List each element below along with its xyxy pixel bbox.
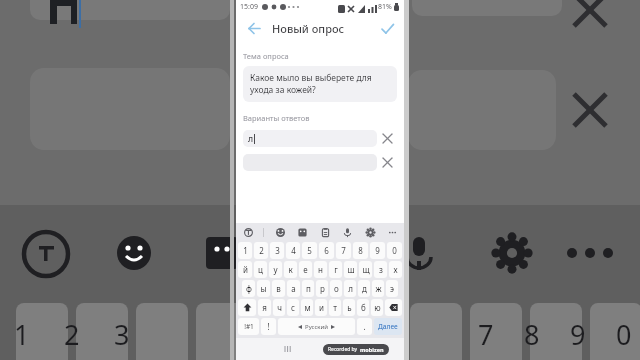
staticText: 0 bbox=[392, 245, 397, 256]
staticText: э bbox=[390, 283, 394, 294]
button[interactable]: 5 bbox=[302, 242, 317, 259]
staticText: 4 bbox=[291, 245, 296, 256]
staticText: ж bbox=[375, 283, 382, 294]
button[interactable]: !#1 bbox=[238, 318, 259, 335]
button[interactable]: Перевод bbox=[241, 225, 255, 239]
button[interactable]: Удалить вариант bbox=[377, 128, 397, 148]
staticText: б bbox=[361, 302, 366, 313]
staticText: 9 bbox=[570, 316, 586, 353]
button[interactable]: р bbox=[316, 280, 328, 297]
button[interactable]: 3 bbox=[270, 242, 284, 259]
staticText: 7 bbox=[341, 245, 346, 256]
button[interactable]: ш bbox=[344, 261, 357, 278]
button[interactable]: Голосовой ввод bbox=[340, 225, 354, 239]
staticText: л bbox=[248, 133, 254, 145]
staticText: н bbox=[318, 264, 323, 275]
staticText: ь bbox=[347, 302, 352, 313]
button[interactable]: 7 bbox=[336, 242, 351, 259]
button[interactable]: ь bbox=[343, 299, 355, 316]
button[interactable]: Далее bbox=[374, 318, 402, 335]
staticText: я bbox=[262, 302, 267, 313]
button[interactable]: Буфер обмена bbox=[318, 225, 332, 239]
button[interactable]: 9 bbox=[370, 242, 385, 259]
staticText: ш bbox=[347, 264, 355, 275]
button[interactable]: Эмодзи bbox=[273, 225, 287, 239]
button[interactable]: е bbox=[299, 261, 312, 278]
staticText: 9 bbox=[375, 245, 380, 256]
button[interactable]: 6 bbox=[319, 242, 334, 259]
button[interactable]: ж bbox=[372, 280, 384, 297]
staticText: г bbox=[334, 264, 338, 275]
staticText: т bbox=[333, 302, 337, 313]
staticText: 3 bbox=[275, 245, 280, 256]
button[interactable]: й bbox=[238, 261, 252, 278]
button[interactable]: Backspace bbox=[385, 299, 402, 316]
button[interactable]: ы bbox=[257, 280, 270, 297]
staticText: з bbox=[379, 264, 383, 275]
button[interactable]: х bbox=[389, 261, 402, 278]
button[interactable]: у bbox=[269, 261, 282, 278]
staticText: 1 bbox=[14, 316, 30, 353]
button[interactable]: б bbox=[357, 299, 369, 316]
button[interactable]: л bbox=[243, 130, 377, 147]
button[interactable]: щ bbox=[359, 261, 372, 278]
staticText: ф bbox=[246, 283, 252, 294]
staticText: п bbox=[306, 283, 311, 294]
button[interactable]: э bbox=[386, 280, 398, 297]
button[interactable]: л bbox=[344, 280, 356, 297]
button[interactable]: Назад bbox=[243, 18, 263, 38]
button[interactable]: Shift bbox=[238, 299, 256, 316]
button[interactable]: т bbox=[329, 299, 341, 316]
button[interactable]: к bbox=[284, 261, 297, 278]
staticText: а bbox=[291, 283, 296, 294]
button[interactable]: ю bbox=[371, 299, 383, 316]
button[interactable]: ч bbox=[273, 299, 285, 316]
staticText: . bbox=[363, 321, 366, 332]
button[interactable]: Сохранить bbox=[377, 18, 397, 38]
button[interactable]: я bbox=[258, 299, 271, 316]
staticText: р bbox=[320, 283, 325, 294]
button[interactable]: 4 bbox=[286, 242, 300, 259]
button[interactable]: н bbox=[314, 261, 327, 278]
button[interactable]: з bbox=[374, 261, 387, 278]
button[interactable]: 2 bbox=[254, 242, 268, 259]
staticText: о bbox=[334, 283, 339, 294]
button[interactable]: ц bbox=[254, 261, 267, 278]
button[interactable]: 8 bbox=[353, 242, 368, 259]
button[interactable]: ф bbox=[242, 280, 255, 297]
button[interactable]: и bbox=[315, 299, 327, 316]
button[interactable]: о bbox=[330, 280, 342, 297]
staticText: с bbox=[291, 302, 295, 313]
button[interactable]: . bbox=[357, 318, 372, 335]
staticText: Тема опроса bbox=[243, 51, 289, 61]
staticText: 2 bbox=[64, 316, 80, 353]
button[interactable]: в bbox=[272, 280, 285, 297]
button[interactable]: Какое мыло вы выберете для ухода за коже… bbox=[243, 66, 397, 102]
staticText: к bbox=[288, 264, 293, 275]
staticText: 7 bbox=[478, 316, 494, 353]
button[interactable]: Настройки bbox=[363, 225, 377, 239]
button[interactable]: Стикеры bbox=[295, 225, 309, 239]
button[interactable]: 1 bbox=[238, 242, 252, 259]
button[interactable]: с bbox=[287, 299, 299, 316]
staticText: л bbox=[348, 283, 353, 294]
staticText: 2 bbox=[259, 245, 264, 256]
button[interactable]: а bbox=[287, 280, 300, 297]
staticText: mobizen bbox=[360, 346, 384, 353]
staticText: й bbox=[243, 264, 248, 275]
button[interactable]: Последние приложения bbox=[278, 339, 298, 359]
staticText: 1 bbox=[243, 245, 248, 256]
button[interactable]: Русский bbox=[278, 318, 355, 335]
button[interactable]: 0 bbox=[387, 242, 402, 259]
staticText: Recorded by bbox=[328, 346, 358, 353]
button[interactable]: Удалить вариант bbox=[377, 152, 397, 172]
button[interactable]: Ещё bbox=[385, 225, 399, 239]
button[interactable]: г bbox=[329, 261, 342, 278]
button[interactable]: м bbox=[301, 299, 313, 316]
staticText: Новый опрос bbox=[272, 21, 345, 36]
staticText: в bbox=[276, 283, 281, 294]
button[interactable]: ! bbox=[261, 318, 276, 335]
button[interactable]: п bbox=[302, 280, 314, 297]
button[interactable]: д bbox=[358, 280, 370, 297]
